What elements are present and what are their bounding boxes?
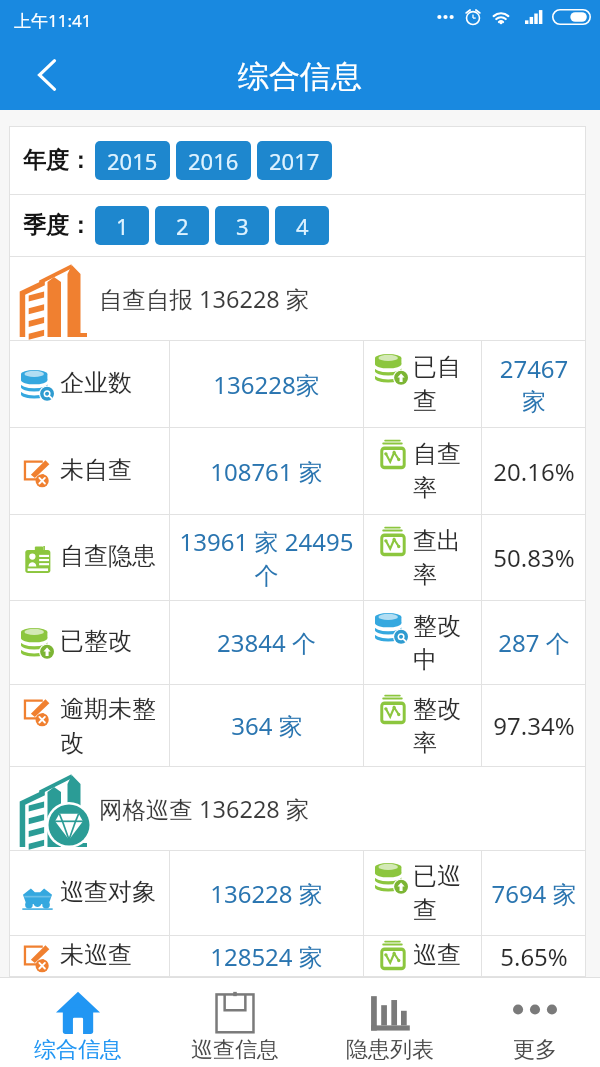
staticText: 综合信息 (238, 57, 362, 96)
staticText: 未巡查 (60, 940, 132, 970)
staticText: 4 (296, 211, 309, 241)
staticText: 23844 个 (217, 626, 316, 659)
staticText: 更多 (513, 1036, 557, 1064)
button[interactable]: 1 (95, 206, 149, 245)
button[interactable]: 4 (275, 206, 329, 245)
staticText: 2015 (107, 146, 158, 176)
staticText: 97.34% (493, 709, 575, 742)
button[interactable]: 隐患列表 (320, 977, 460, 1067)
staticText: 27467 家 (488, 352, 580, 417)
staticText: 2 (176, 211, 189, 241)
staticText: 1 (116, 211, 129, 241)
staticText: 7694 家 (491, 877, 577, 910)
staticText: 5.65% (500, 940, 568, 973)
staticText: 逾期未整改 (60, 694, 166, 758)
staticText: 年度： (23, 146, 92, 175)
staticText: 巡查 (413, 940, 461, 970)
staticText: 整改中 (413, 611, 479, 675)
staticText: 已整改 (60, 626, 132, 656)
staticText: 上午11:41 (14, 9, 92, 32)
button[interactable]: Back (0, 40, 94, 110)
button[interactable]: 更多 (465, 977, 600, 1067)
button[interactable]: 2 (155, 206, 209, 245)
staticText: 整改率 (413, 694, 479, 758)
staticText: 3 (236, 211, 249, 241)
staticText: 自查隐患 (60, 541, 156, 571)
button[interactable]: 2017 (257, 141, 332, 180)
staticText: 13961 家 24495 个 (175, 525, 358, 591)
staticText: 企业数 (60, 368, 132, 398)
button[interactable]: 巡查信息 (165, 977, 305, 1067)
staticText: 已巡查 (413, 861, 479, 925)
staticText: 136228家 (213, 368, 320, 401)
staticText: 自查率 (413, 439, 479, 503)
staticText: 季度： (23, 211, 92, 240)
button[interactable]: 综合信息 (8, 977, 148, 1067)
staticText: 查出率 (413, 526, 479, 590)
staticText: 巡查信息 (191, 1036, 279, 1064)
staticText: 自查自报 136228 家 (99, 283, 310, 315)
button[interactable]: 2015 (95, 141, 170, 180)
staticText: 2017 (269, 146, 320, 176)
staticText: 50.83% (493, 541, 575, 574)
button[interactable]: 2016 (176, 141, 251, 180)
staticText: 隐患列表 (346, 1036, 434, 1064)
staticText: 128524 家 (210, 940, 323, 973)
staticText: 108761 家 (210, 455, 323, 488)
staticText: 已自查 (413, 352, 479, 416)
staticText: 未自查 (60, 455, 132, 485)
staticText: 巡查对象 (60, 877, 156, 907)
button[interactable]: 3 (215, 206, 269, 245)
staticText: 20.16% (493, 455, 575, 488)
staticText: 287 个 (498, 626, 570, 659)
staticText: 网格巡查 136228 家 (99, 793, 310, 825)
staticText: 364 家 (231, 709, 303, 742)
staticText: 136228 家 (210, 877, 323, 910)
staticText: 2016 (188, 146, 239, 176)
staticText: 综合信息 (34, 1036, 122, 1064)
